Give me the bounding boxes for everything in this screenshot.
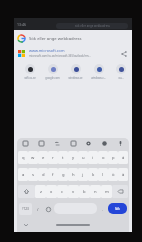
button[interactable]: e bbox=[38, 151, 48, 164]
button[interactable]: u bbox=[78, 151, 88, 164]
staticText: windows.se bbox=[68, 76, 83, 80]
staticText: c bbox=[61, 189, 64, 195]
staticText: www.microsoft.com bbox=[29, 48, 65, 53]
staticText: l bbox=[102, 172, 104, 178]
button[interactable]: q bbox=[18, 151, 28, 164]
staticText: n bbox=[94, 189, 97, 195]
button[interactable]: r bbox=[48, 151, 58, 164]
button[interactable]: Sök bbox=[108, 203, 127, 214]
button[interactable]: o bbox=[98, 151, 108, 164]
button[interactable]: v bbox=[68, 185, 79, 198]
button[interactable]: Röstinmatning bbox=[116, 139, 125, 148]
staticText: microsoft.com/sv-se/microsoft-365/outloo… bbox=[29, 54, 91, 58]
staticText: p bbox=[112, 155, 115, 161]
button[interactable]: windows.se bbox=[64, 64, 87, 80]
staticText: k bbox=[92, 172, 95, 178]
staticText: d bbox=[42, 172, 45, 178]
button[interactable]: f bbox=[48, 168, 58, 181]
button[interactable]: Urklipp bbox=[21, 139, 30, 148]
button[interactable]: Kamera bbox=[69, 139, 78, 148]
button[interactable]: Sök eller ange webbadress bbox=[14, 32, 132, 45]
staticText: Sök bbox=[115, 207, 120, 211]
staticText: ä bbox=[122, 172, 125, 178]
staticText: t bbox=[62, 155, 64, 161]
staticText: z bbox=[40, 189, 42, 195]
staticText: y bbox=[72, 155, 75, 161]
button[interactable]: c bbox=[57, 185, 68, 198]
staticText: Sök eller ange webbadress bbox=[29, 36, 82, 42]
button[interactable]: h bbox=[68, 168, 78, 181]
button[interactable]: å bbox=[118, 151, 128, 164]
button[interactable]: i bbox=[88, 151, 98, 164]
staticText: v bbox=[72, 189, 75, 195]
button[interactable]: Teman bbox=[100, 139, 109, 148]
button[interactable]: Radera bbox=[112, 185, 128, 198]
staticText: google.com bbox=[45, 76, 60, 80]
button[interactable]: ?123 bbox=[19, 203, 32, 215]
staticText: å bbox=[122, 155, 125, 161]
button[interactable]: windows.c… bbox=[87, 64, 110, 80]
staticText: a bbox=[22, 172, 25, 178]
button[interactable]: ö bbox=[108, 168, 118, 181]
staticText: o bbox=[102, 155, 105, 161]
staticText: m bbox=[105, 189, 109, 195]
staticText: 13:46 bbox=[17, 22, 26, 27]
button[interactable]: g bbox=[58, 168, 68, 181]
button[interactable]: google.com bbox=[41, 64, 64, 80]
staticText: u bbox=[82, 155, 85, 161]
staticText: q bbox=[22, 155, 25, 161]
button[interactable]: Översätt bbox=[53, 139, 62, 148]
button[interactable]: Dölj tangentbordet bbox=[22, 221, 29, 228]
staticText: e bbox=[42, 155, 45, 161]
staticText: h bbox=[72, 172, 75, 178]
button[interactable]: m bbox=[101, 185, 112, 198]
button[interactable]: Klistermärken bbox=[37, 139, 46, 148]
button[interactable]: www.microsoft.com bbox=[14, 45, 132, 61]
button[interactable]: wifi-sv-se bbox=[18, 64, 41, 80]
button[interactable]: s bbox=[28, 168, 38, 181]
staticText: ou… bbox=[118, 76, 124, 80]
staticText: x bbox=[50, 189, 53, 195]
staticText: windows.c… bbox=[91, 76, 106, 80]
staticText: f bbox=[52, 172, 54, 178]
button[interactable]: / bbox=[34, 203, 42, 215]
button[interactable]: b bbox=[79, 185, 90, 198]
staticText: wifi-sv-se bbox=[24, 76, 36, 80]
button[interactable]: Skift bbox=[18, 185, 35, 198]
button[interactable]: a bbox=[18, 168, 28, 181]
button[interactable]: p bbox=[108, 151, 118, 164]
button[interactable]: d bbox=[38, 168, 48, 181]
staticText: g bbox=[62, 172, 65, 178]
staticText: sök eller ange webbadress bbox=[75, 24, 110, 28]
button[interactable]: sök eller ange webbadress bbox=[56, 23, 128, 29]
button[interactable]: ou… bbox=[110, 64, 132, 80]
staticText: . bbox=[102, 207, 104, 212]
staticText: j bbox=[82, 172, 84, 178]
button[interactable]: x bbox=[46, 185, 57, 198]
button[interactable]: Dela bbox=[119, 49, 128, 58]
button[interactable]: k bbox=[88, 168, 98, 181]
button[interactable]: j bbox=[78, 168, 88, 181]
staticText: b bbox=[83, 189, 86, 195]
staticText: ?123 bbox=[22, 207, 29, 211]
staticText: i bbox=[92, 155, 94, 161]
button[interactable]: t bbox=[58, 151, 68, 164]
button[interactable]: Inställningar bbox=[84, 139, 93, 148]
staticText: r bbox=[52, 155, 54, 161]
staticText: / bbox=[37, 207, 39, 212]
button[interactable]: Emoji bbox=[43, 203, 53, 215]
button[interactable]: y bbox=[68, 151, 78, 164]
staticText: ö bbox=[112, 172, 115, 178]
button[interactable]: l bbox=[98, 168, 108, 181]
staticText: s bbox=[32, 172, 35, 178]
button[interactable]: n bbox=[90, 185, 101, 198]
button[interactable]: ä bbox=[118, 168, 128, 181]
button[interactable]: z bbox=[35, 185, 46, 198]
button[interactable]: w bbox=[28, 151, 38, 164]
staticText: w bbox=[31, 155, 35, 161]
